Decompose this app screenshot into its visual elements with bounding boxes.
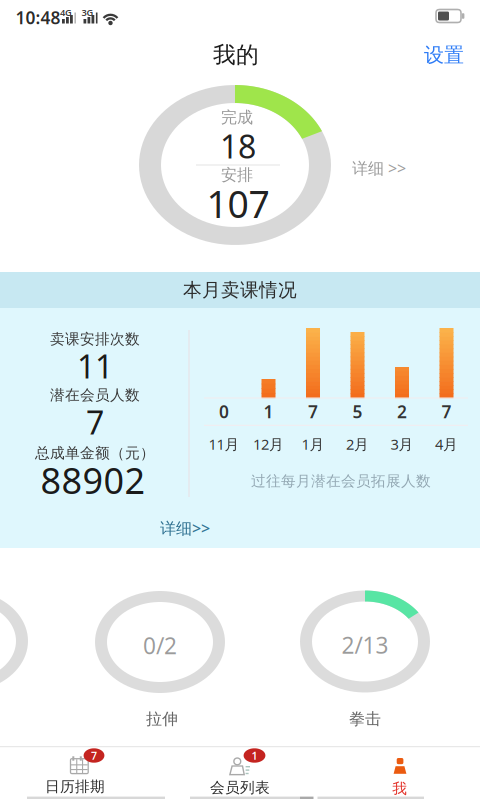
staticText: 3月 bbox=[390, 434, 413, 454]
staticText: 5 bbox=[352, 400, 362, 423]
staticText: 7 bbox=[441, 400, 451, 423]
staticText: 拉伸 bbox=[146, 709, 178, 729]
staticText: 10:48 bbox=[15, 6, 60, 29]
staticText: 过往每月潜在会员拓展人数 bbox=[251, 472, 431, 490]
staticText: 0 bbox=[219, 400, 229, 423]
staticText: 1 bbox=[251, 748, 257, 763]
staticText: 3G bbox=[81, 6, 93, 19]
staticText: 设置 bbox=[424, 43, 464, 67]
staticText: 4G bbox=[60, 6, 72, 19]
staticText: 卖课安排次数 bbox=[50, 330, 140, 348]
button[interactable]: 我 bbox=[322, 747, 475, 799]
staticText: 我的 bbox=[213, 41, 259, 69]
button[interactable]: 设置 bbox=[411, 35, 477, 75]
staticText: 详细 >> bbox=[352, 157, 406, 179]
staticText: 1月 bbox=[301, 434, 324, 454]
staticText: 7 bbox=[91, 748, 97, 763]
button[interactable]: 会员列表 bbox=[161, 747, 314, 799]
staticText: 12月 bbox=[253, 434, 284, 454]
staticText: 我 bbox=[392, 779, 407, 797]
staticText: 日历排期 bbox=[45, 777, 105, 795]
staticText: 2 bbox=[397, 400, 407, 423]
staticText: 会员列表 bbox=[210, 778, 270, 796]
staticText: 11 bbox=[77, 345, 113, 387]
staticText: 完成 bbox=[221, 108, 253, 127]
staticText: 总成单金额（元） bbox=[35, 444, 155, 462]
staticText: 11月 bbox=[208, 434, 239, 454]
staticText: 0/2 bbox=[143, 630, 177, 660]
staticText: 安排 bbox=[221, 165, 253, 185]
staticText: 潜在会员人数 bbox=[50, 386, 140, 404]
staticText: 7 bbox=[308, 400, 318, 423]
staticText: 18 bbox=[220, 125, 256, 167]
staticText: 4月 bbox=[435, 434, 458, 454]
staticText: 拳击 bbox=[349, 709, 381, 729]
button[interactable]: 日历排期 bbox=[1, 747, 154, 799]
staticText: 1 bbox=[263, 400, 273, 423]
staticText: 本月卖课情况 bbox=[183, 278, 297, 301]
staticText: 详细>> bbox=[160, 517, 210, 539]
staticText: 2月 bbox=[346, 434, 369, 454]
button[interactable]: 0/2 bbox=[80, 585, 240, 745]
button[interactable]: 2/13 bbox=[285, 585, 445, 745]
button[interactable]: 详细 >> bbox=[339, 151, 419, 185]
staticText: 7 bbox=[86, 401, 104, 443]
staticText: 2/13 bbox=[341, 630, 388, 660]
staticText: 107 bbox=[206, 179, 269, 228]
button[interactable]: 详细>> bbox=[150, 513, 220, 543]
staticText: 88902 bbox=[40, 456, 145, 504]
